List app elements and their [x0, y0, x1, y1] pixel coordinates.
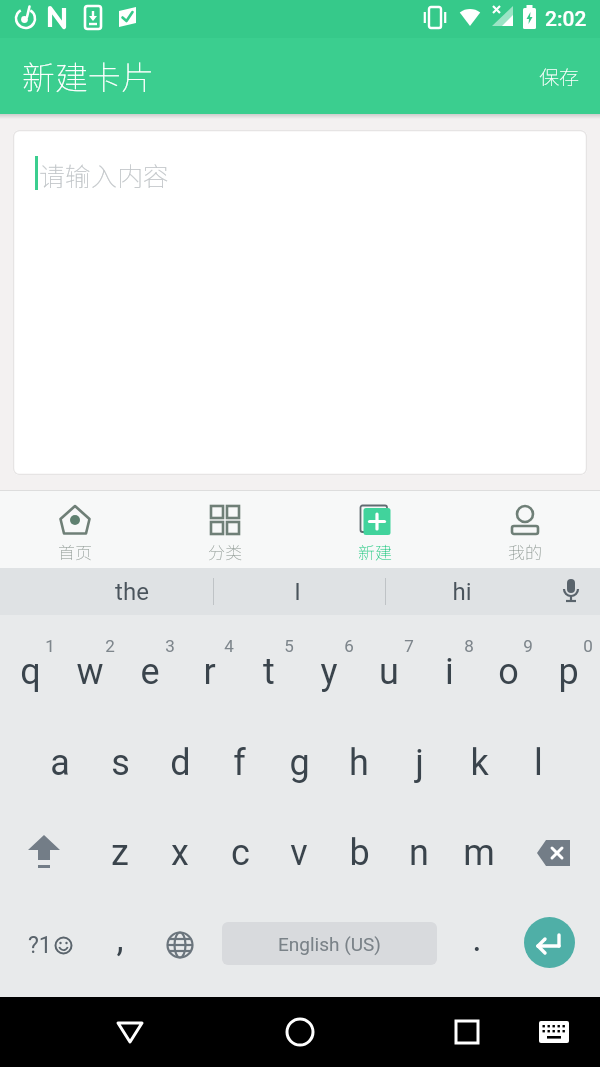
button[interactable]: 新建 — [300, 491, 450, 568]
staticText: 2 — [105, 636, 115, 656]
button[interactable]: k — [449, 717, 509, 809]
staticText: i — [445, 651, 454, 693]
button[interactable]: 请输入内容 — [13, 130, 587, 475]
staticText: 新建 — [358, 539, 392, 564]
staticText: 5 — [284, 636, 294, 656]
button[interactable] — [150, 899, 210, 991]
staticText: c — [231, 832, 250, 874]
button[interactable]: c — [210, 807, 270, 899]
button[interactable]: hi — [382, 568, 542, 615]
button[interactable]: l — [508, 717, 568, 809]
button[interactable]: ?1 — [10, 899, 90, 991]
staticText: 0 — [583, 636, 593, 656]
button[interactable]: d — [150, 717, 210, 809]
button[interactable] — [524, 917, 575, 968]
staticText: 3 — [165, 636, 175, 656]
button[interactable]: j — [389, 717, 449, 809]
button[interactable]: m — [449, 807, 509, 899]
button[interactable]: f — [209, 717, 269, 809]
staticText: f — [233, 742, 246, 784]
button[interactable]: p — [538, 626, 598, 718]
staticText: 我的 — [508, 539, 542, 564]
staticText: 分类 — [208, 539, 242, 564]
button[interactable] — [523, 807, 585, 899]
staticText: y — [320, 651, 338, 693]
button[interactable]: 我的 — [450, 491, 600, 568]
staticText: 1 — [45, 636, 55, 656]
staticText: l — [534, 742, 543, 784]
button[interactable]: 分类 — [150, 491, 300, 568]
button[interactable]: u — [359, 626, 419, 718]
staticText: ?1 — [28, 932, 52, 959]
button[interactable]: y — [299, 626, 359, 718]
button[interactable]: 首页 — [0, 491, 150, 568]
button[interactable]: . — [447, 899, 507, 991]
button[interactable]: I — [217, 568, 377, 615]
button[interactable]: q — [0, 626, 60, 718]
button[interactable]: English (US) — [222, 922, 437, 965]
staticText: g — [289, 742, 310, 784]
staticText: d — [170, 742, 191, 784]
staticText: s — [111, 742, 130, 784]
staticText: 请输入内容 — [39, 156, 170, 194]
button[interactable]: the — [52, 568, 212, 615]
staticText: h — [349, 742, 369, 784]
staticText: v — [290, 832, 308, 874]
staticText: m — [463, 832, 495, 874]
staticText: 首页 — [58, 539, 92, 564]
button[interactable]: z — [90, 807, 150, 899]
button[interactable]: o — [478, 626, 538, 718]
button[interactable]: , — [90, 899, 150, 991]
button[interactable] — [530, 1008, 578, 1056]
button[interactable] — [542, 568, 600, 615]
staticText: 7 — [404, 636, 414, 656]
staticText: , — [116, 918, 124, 960]
button[interactable]: 保存 — [518, 38, 600, 114]
button[interactable] — [440, 1005, 494, 1059]
staticText: 2:02 — [545, 7, 587, 32]
staticText: a — [50, 742, 70, 784]
staticText: e — [140, 651, 160, 693]
button[interactable]: v — [269, 807, 329, 899]
button[interactable]: n — [389, 807, 449, 899]
staticText: r — [203, 651, 216, 693]
button[interactable]: b — [329, 807, 389, 899]
staticText: the — [115, 578, 149, 606]
staticText: x — [171, 832, 189, 874]
staticText: hi — [452, 578, 472, 606]
staticText: I — [294, 578, 301, 606]
button[interactable]: i — [419, 626, 479, 718]
staticText: 保存 — [539, 62, 579, 91]
staticText: j — [415, 742, 424, 784]
staticText: w — [76, 651, 104, 693]
staticText: k — [470, 742, 489, 784]
staticText: q — [20, 651, 41, 693]
button[interactable]: r — [179, 626, 239, 718]
button[interactable]: s — [90, 717, 150, 809]
staticText: z — [111, 832, 129, 874]
button[interactable]: x — [150, 807, 210, 899]
staticText: p — [558, 651, 579, 693]
button[interactable]: t — [239, 626, 299, 718]
button[interactable]: a — [30, 717, 90, 809]
button[interactable] — [15, 807, 75, 899]
staticText: 9 — [523, 636, 533, 656]
staticText: 8 — [464, 636, 474, 656]
button[interactable]: w — [60, 626, 120, 718]
staticText: . — [472, 918, 482, 960]
staticText: t — [263, 651, 275, 693]
staticText: u — [379, 651, 399, 693]
button[interactable]: g — [269, 717, 329, 809]
staticText: o — [498, 651, 519, 693]
button[interactable]: e — [120, 626, 180, 718]
staticText: English (US) — [278, 933, 381, 955]
staticText: 4 — [224, 636, 234, 656]
button[interactable]: h — [329, 717, 389, 809]
button[interactable] — [103, 1005, 157, 1059]
staticText: b — [349, 832, 370, 874]
staticText: 6 — [344, 636, 354, 656]
staticText: n — [409, 832, 429, 874]
staticText: 新建卡片 — [22, 52, 154, 100]
button[interactable] — [273, 1005, 327, 1059]
